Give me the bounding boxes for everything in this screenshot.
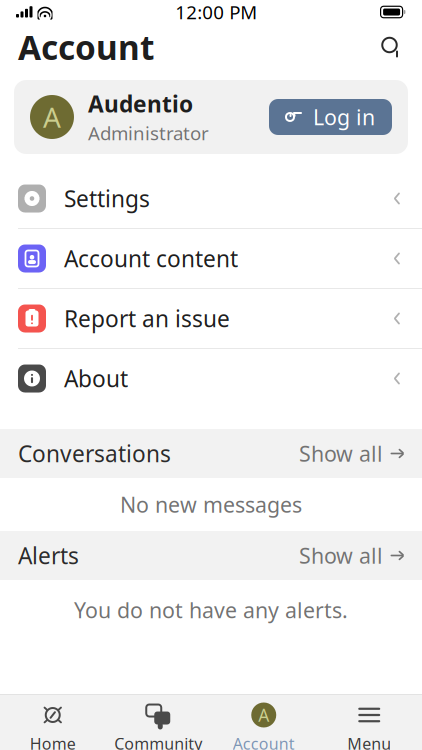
staticText: Report an issue [64, 303, 230, 333]
staticText: Administrator [88, 121, 209, 145]
button[interactable]: Home [0, 702, 105, 750]
button[interactable]: Log in [269, 99, 392, 135]
button[interactable]: Search [374, 30, 408, 64]
staticText: Conversations [18, 438, 171, 468]
button[interactable]: Report an issue [0, 289, 422, 349]
staticText: Community [114, 733, 202, 750]
staticText: Alerts [18, 540, 79, 570]
staticText: Settings [64, 183, 150, 213]
button[interactable]: A [211, 702, 316, 750]
staticText: Audentio [88, 89, 193, 119]
staticText: You do not have any alerts. [74, 596, 348, 624]
button[interactable]: Show all [299, 439, 404, 468]
staticText: No new messages [120, 490, 302, 519]
button[interactable]: Account content [0, 229, 422, 289]
button[interactable]: Show all [299, 541, 404, 570]
staticText: Show all [299, 541, 383, 570]
button[interactable]: About [0, 349, 422, 408]
button[interactable]: Community [105, 702, 211, 750]
staticText: Show all [299, 439, 383, 468]
staticText: Account [18, 25, 154, 69]
staticText: 12:00 PM [175, 0, 257, 24]
staticText: Log in [313, 103, 375, 131]
staticText: About [64, 363, 128, 393]
staticText: Menu [347, 733, 391, 750]
staticText: Home [30, 733, 76, 750]
staticText: Account content [64, 243, 238, 273]
staticText: Account [233, 733, 295, 750]
button[interactable]: Settings [0, 169, 422, 229]
staticText: A [43, 98, 61, 136]
staticText: A [258, 703, 269, 726]
button[interactable]: Menu [316, 702, 422, 750]
